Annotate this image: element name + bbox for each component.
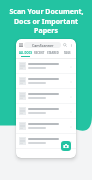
button[interactable]: RECENT [32,50,46,58]
staticText: TAGS [64,51,71,55]
button[interactable]: Document options [68,94,73,99]
button[interactable]: Document options [68,124,73,129]
button[interactable]: ALL DOCS [18,50,32,58]
button[interactable]: Document options [16,104,76,118]
button[interactable]: Document options [16,134,76,148]
button[interactable]: Document options [68,139,73,144]
button[interactable]: Document options [16,59,76,73]
button[interactable]: More options [68,42,74,48]
staticText: CamScanner [32,43,54,48]
button[interactable]: Document options [68,79,73,84]
button[interactable]: TAGS [60,50,74,58]
staticText: ALL DOCS [19,51,32,55]
button[interactable]: Document options [16,119,76,133]
staticText: Docs or Important Papers [3,17,89,35]
button[interactable]: Document options [16,89,76,103]
button[interactable]: STARRED [46,50,60,58]
staticText: RECENT [34,51,45,55]
button[interactable]: Scan new document [61,141,71,151]
staticText: Scan Your Document, [9,7,84,17]
button[interactable]: Document options [68,109,73,114]
button[interactable]: Document options [16,74,76,88]
staticText: STARRED [47,51,59,55]
button[interactable]: Search [61,41,68,48]
button[interactable]: Document options [68,64,73,69]
button[interactable]: CamScanner [24,42,61,48]
button[interactable]: Open navigation menu [18,42,24,48]
